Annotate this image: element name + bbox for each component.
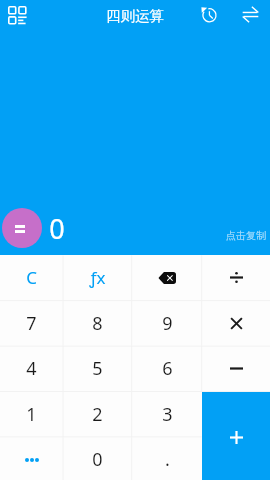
- button[interactable]: .: [132, 437, 202, 480]
- button[interactable]: 9: [132, 301, 202, 346]
- staticText: 1: [26, 402, 37, 427]
- button[interactable]: History: [196, 2, 221, 27]
- button[interactable]: 4: [0, 346, 63, 391]
- staticText: 3: [162, 402, 173, 427]
- button[interactable]: Swap units: [238, 2, 263, 27]
- staticText: 0: [49, 210, 65, 247]
- staticText: .: [165, 447, 170, 472]
- staticText: 四则运算: [106, 7, 164, 25]
- staticText: 7: [26, 311, 37, 336]
- button[interactable]: 8: [63, 301, 132, 346]
- button[interactable]: Multiply: [202, 301, 270, 346]
- staticText: 6: [162, 356, 173, 381]
- button[interactable]: 点击复制: [224, 222, 268, 248]
- button[interactable]: Backspace: [132, 255, 202, 300]
- staticText: 4: [26, 356, 37, 381]
- button[interactable]: Divide: [202, 255, 270, 300]
- button[interactable]: 2: [63, 392, 132, 437]
- staticText: 2: [92, 402, 103, 427]
- staticText: 5: [92, 356, 103, 381]
- button[interactable]: 0: [63, 437, 132, 480]
- button[interactable]: Equals: [2, 208, 42, 248]
- staticText: ƒx: [89, 266, 106, 289]
- button[interactable]: 5: [63, 346, 132, 391]
- button[interactable]: 3: [132, 392, 202, 437]
- button[interactable]: ƒx: [63, 255, 132, 300]
- button[interactable]: Menu: [4, 2, 29, 27]
- button[interactable]: Plus: [202, 392, 270, 480]
- staticText: 8: [92, 311, 103, 336]
- button[interactable]: C: [0, 255, 63, 300]
- staticText: 9: [162, 311, 173, 336]
- button[interactable]: 7: [0, 301, 63, 346]
- button[interactable]: More: [0, 437, 63, 480]
- button[interactable]: 1: [0, 392, 63, 437]
- button[interactable]: Minus: [202, 346, 270, 391]
- staticText: 0: [92, 447, 103, 472]
- staticText: C: [26, 266, 37, 289]
- button[interactable]: 6: [132, 346, 202, 391]
- staticText: 点击复制: [226, 229, 266, 242]
